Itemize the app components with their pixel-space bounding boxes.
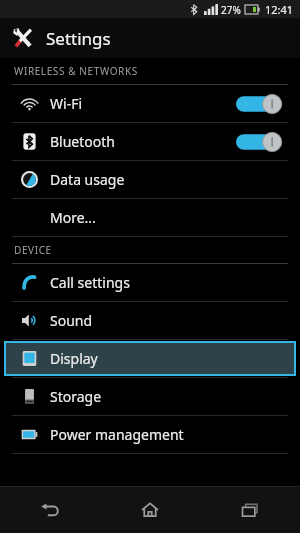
button[interactable]: Recent apps (200, 487, 300, 533)
staticText: Storage (50, 387, 102, 406)
staticText: Settings (46, 27, 111, 50)
button[interactable]: Power management (0, 416, 300, 453)
button[interactable]: Home (100, 487, 200, 533)
staticText: Bluetooth (50, 132, 115, 151)
button[interactable]: Toggle (236, 94, 290, 114)
staticText: Power management (50, 425, 184, 444)
button[interactable]: Data usage (0, 161, 300, 198)
button[interactable]: Bluetooth (0, 123, 300, 160)
staticText: WIRELESS & NETWORKS (14, 64, 138, 78)
button[interactable]: Storage (0, 378, 300, 415)
staticText: Data usage (50, 170, 125, 189)
staticText: 12:41 (265, 2, 294, 17)
staticText: More... (50, 208, 96, 227)
button[interactable]: More... (0, 199, 300, 236)
button[interactable]: Back (0, 487, 100, 533)
button[interactable]: Toggle (236, 132, 290, 152)
staticText: Sound (50, 311, 93, 330)
staticText: Display (50, 349, 98, 368)
staticText: Wi-Fi (50, 94, 83, 113)
button[interactable]: Wi-Fi (0, 85, 300, 122)
staticText: 27% (221, 3, 241, 17)
button[interactable]: Sound (0, 302, 300, 339)
staticText: Call settings (50, 273, 130, 292)
button[interactable]: Call settings (0, 264, 300, 301)
button[interactable]: Display (0, 340, 300, 377)
staticText: DEVICE (14, 243, 52, 257)
